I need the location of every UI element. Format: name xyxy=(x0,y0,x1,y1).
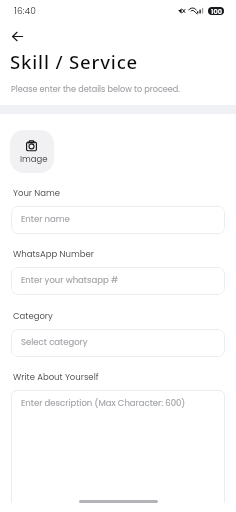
button[interactable]: Enter description (Max Character: 600) xyxy=(11,390,225,503)
staticText: 100 xyxy=(211,7,222,15)
staticText: Enter description (Max Character: 600) xyxy=(21,397,186,409)
staticText: Please enter the details below to procee… xyxy=(11,83,181,94)
button[interactable]: Add image xyxy=(10,130,54,173)
staticText: Write About Yourself xyxy=(13,371,99,383)
staticText: Enter your whatsapp # xyxy=(21,274,119,286)
staticText: Skill / Service xyxy=(10,49,139,74)
staticText: WhatsApp Number xyxy=(13,248,94,260)
button[interactable]: Enter your whatsapp # xyxy=(11,267,225,295)
staticText: Enter name xyxy=(21,213,70,225)
button[interactable]: Back xyxy=(5,24,29,48)
button[interactable]: Enter name xyxy=(11,206,225,234)
button[interactable]: Select category xyxy=(11,329,225,357)
staticText: Image xyxy=(20,153,48,165)
staticText: Category xyxy=(13,310,53,322)
staticText: Your Name xyxy=(13,187,61,199)
staticText: Select category xyxy=(21,336,88,348)
staticText: 16:40 xyxy=(14,5,36,18)
